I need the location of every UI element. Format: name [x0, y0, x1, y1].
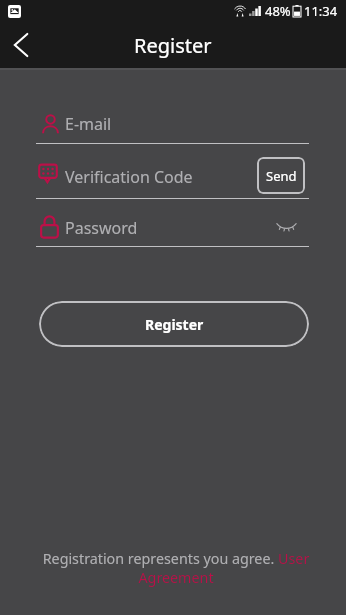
button[interactable]: Verification Code	[36, 159, 309, 199]
staticText: 11:34	[304, 2, 338, 20]
staticText: Register	[134, 32, 212, 59]
button[interactable]: Back	[0, 22, 46, 68]
button[interactable]: Registration represents you agree. User …	[40, 549, 312, 587]
button[interactable]: E-mail	[36, 104, 309, 144]
staticText: Verification Code	[65, 166, 193, 188]
staticText: 48%	[265, 2, 291, 20]
button[interactable]: Send	[257, 157, 305, 194]
staticText: Register	[145, 315, 204, 334]
button[interactable]: Show password	[273, 214, 299, 240]
button[interactable]: Register	[39, 301, 309, 347]
staticText: E-mail	[65, 113, 112, 135]
staticText: Send	[266, 167, 297, 185]
button[interactable]: Password	[36, 207, 309, 247]
staticText: Password	[65, 217, 138, 239]
